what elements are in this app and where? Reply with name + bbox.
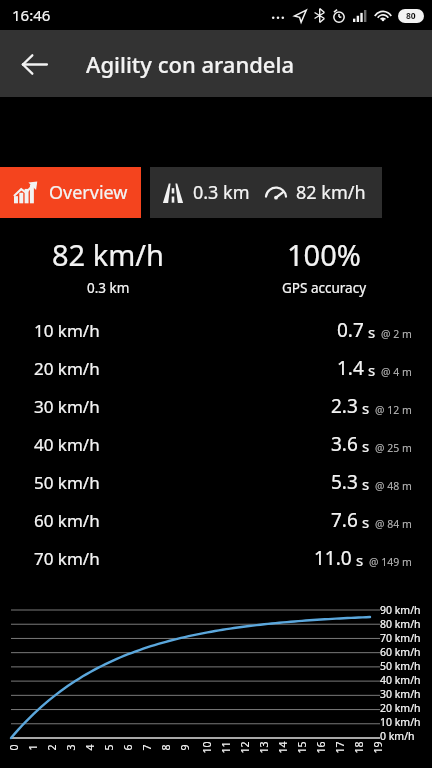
staticText: 12 bbox=[237, 740, 251, 753]
staticText: 2.3 bbox=[331, 393, 358, 419]
staticText: s bbox=[362, 398, 370, 418]
staticText: 3 bbox=[63, 743, 77, 750]
staticText: 80 km/h bbox=[380, 617, 421, 631]
staticText: 90 km/h bbox=[380, 603, 421, 617]
staticText: @ 149 m bbox=[369, 555, 412, 569]
staticText: 40 km/h bbox=[34, 433, 100, 456]
staticText: 10 km/h bbox=[380, 715, 421, 729]
staticText: 30 km/h bbox=[34, 395, 100, 418]
staticText: 19 bbox=[370, 740, 384, 753]
staticText: 3.6 bbox=[331, 431, 358, 457]
staticText: 16 bbox=[313, 740, 327, 753]
staticText: 16:46 bbox=[12, 5, 51, 25]
staticText: 14 bbox=[275, 740, 289, 753]
staticText: @ 84 m bbox=[375, 517, 412, 531]
staticText: 60 km/h bbox=[380, 645, 421, 659]
button[interactable]: 30 km/h bbox=[0, 387, 432, 425]
staticText: 11 bbox=[218, 740, 232, 753]
staticText: 2 bbox=[44, 743, 58, 750]
staticText: @ 12 m bbox=[375, 403, 412, 417]
staticText: s bbox=[362, 436, 370, 456]
staticText: 70 km/h bbox=[380, 631, 421, 645]
staticText: 17 bbox=[332, 740, 346, 753]
staticText: s bbox=[368, 322, 376, 342]
staticText: 82 km/h bbox=[296, 180, 366, 205]
staticText: 50 km/h bbox=[34, 471, 100, 494]
button[interactable]: Overview bbox=[0, 167, 141, 218]
staticText: 5.3 bbox=[331, 469, 358, 495]
staticText: @ 25 m bbox=[375, 441, 412, 455]
staticText: 15 bbox=[294, 740, 308, 753]
staticText: 8 bbox=[158, 743, 172, 750]
button[interactable]: 60 km/h bbox=[0, 501, 432, 539]
button[interactable]: 50 km/h bbox=[0, 463, 432, 501]
staticText: 0.3 km bbox=[193, 180, 250, 205]
staticText: s bbox=[368, 360, 376, 380]
staticText: 9 bbox=[177, 743, 191, 750]
staticText: 0.3 km bbox=[87, 279, 130, 297]
staticText: 0 km/h bbox=[380, 729, 415, 743]
staticText: Overview bbox=[49, 180, 128, 205]
button[interactable]: 20 km/h bbox=[0, 349, 432, 387]
staticText: 20 km/h bbox=[34, 357, 100, 380]
staticText: 0.7 bbox=[337, 317, 364, 343]
staticText: 1 bbox=[25, 743, 39, 750]
staticText: 1.4 bbox=[337, 355, 364, 381]
staticText: 10 bbox=[199, 740, 213, 753]
staticText: 18 bbox=[351, 740, 365, 753]
staticText: 82 km/h bbox=[52, 235, 165, 274]
staticText: s bbox=[362, 512, 370, 532]
staticText: Agility con arandela bbox=[86, 49, 295, 79]
staticText: 70 km/h bbox=[34, 547, 100, 570]
staticText: 11.0 bbox=[314, 545, 352, 571]
staticText: s bbox=[356, 550, 364, 570]
button[interactable]: 10 km/h bbox=[0, 311, 432, 349]
staticText: 7.6 bbox=[331, 507, 358, 533]
button[interactable]: 70 km/h bbox=[0, 539, 432, 577]
staticText: 80 bbox=[406, 10, 416, 22]
staticText: s bbox=[362, 474, 370, 494]
staticText: 100% bbox=[287, 235, 361, 274]
staticText: @ 48 m bbox=[375, 479, 412, 493]
staticText: 4 bbox=[82, 743, 96, 750]
staticText: @ 2 m bbox=[381, 327, 412, 341]
staticText: 50 km/h bbox=[380, 659, 421, 673]
button[interactable]: 40 km/h bbox=[0, 425, 432, 463]
staticText: 60 km/h bbox=[34, 509, 100, 532]
staticText: 0 bbox=[6, 743, 20, 750]
staticText: 40 km/h bbox=[380, 673, 421, 687]
button[interactable]: 0.3 km bbox=[150, 167, 382, 218]
staticText: 7 bbox=[139, 743, 153, 750]
button[interactable]: Back bbox=[10, 40, 58, 88]
staticText: 10 km/h bbox=[34, 319, 100, 342]
staticText: 20 km/h bbox=[380, 701, 421, 715]
staticText: 5 bbox=[101, 743, 115, 750]
staticText: 30 km/h bbox=[380, 687, 421, 701]
staticText: @ 4 m bbox=[381, 365, 412, 379]
staticText: 6 bbox=[120, 743, 134, 750]
staticText: GPS accuracy bbox=[282, 279, 367, 297]
staticText: 13 bbox=[256, 740, 270, 753]
